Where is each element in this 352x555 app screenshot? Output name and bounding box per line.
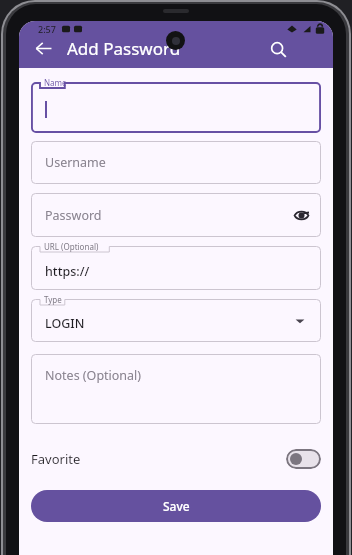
staticText: 2:57 xyxy=(38,23,56,35)
button[interactable]: Type xyxy=(31,299,321,342)
staticText: Type xyxy=(44,294,62,305)
staticText: Name xyxy=(44,77,67,88)
button[interactable]: URL (Optional) xyxy=(31,246,321,290)
staticText: URL (Optional) xyxy=(44,241,99,252)
staticText: Save xyxy=(163,498,190,514)
staticText: LOGIN xyxy=(45,315,85,332)
button[interactable]: Save xyxy=(31,490,321,522)
button[interactable]: Toggle password visibility xyxy=(287,201,315,229)
button[interactable]: Password xyxy=(31,193,321,237)
button[interactable]: Back xyxy=(23,28,63,68)
button[interactable]: Open type dropdown xyxy=(287,308,313,334)
button[interactable]: Notes (Optional) xyxy=(31,354,321,424)
button[interactable]: Favorite xyxy=(31,442,321,476)
staticText: Username xyxy=(45,154,106,171)
button[interactable]: Username xyxy=(31,141,321,184)
staticText: https:// xyxy=(45,263,90,280)
button[interactable]: Search xyxy=(261,32,295,66)
staticText: Password xyxy=(45,207,102,224)
staticText: Add Password xyxy=(67,37,181,60)
staticText: Favorite xyxy=(31,450,81,468)
staticText: Notes (Optional) xyxy=(45,367,142,384)
button[interactable]: Name xyxy=(31,82,321,133)
